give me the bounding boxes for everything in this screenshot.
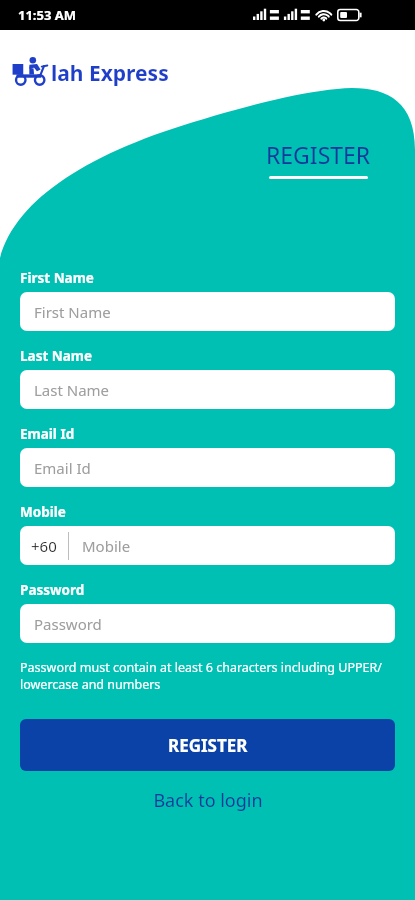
button[interactable]: Password [20, 604, 395, 643]
button[interactable]: REGISTER [20, 719, 395, 771]
staticText: Last Name [34, 380, 110, 400]
staticText: Mobile [20, 503, 66, 521]
staticText: Password [34, 614, 102, 634]
staticText: Email Id [20, 425, 75, 443]
staticText: lah Express [51, 59, 169, 88]
staticText: Last Name [20, 347, 93, 365]
button[interactable]: Back to login [20, 784, 395, 816]
staticText: First Name [34, 302, 111, 322]
staticText: REGISTER [168, 734, 248, 757]
staticText: Password [20, 581, 85, 599]
staticText: Back to login [153, 788, 263, 813]
staticText: REGISTER [266, 139, 371, 170]
button[interactable]: First Name [20, 292, 395, 331]
staticText: Mobile [82, 536, 131, 556]
button[interactable]: +60 [20, 526, 395, 565]
button[interactable]: Last Name [20, 370, 395, 409]
staticText: First Name [20, 269, 94, 287]
staticText: 11:53 AM [18, 6, 77, 24]
staticText: Password must contain at least 6 charact… [20, 659, 395, 693]
other: Olah Express logo [12, 55, 56, 91]
button[interactable]: Email Id [20, 448, 395, 487]
staticText: Email Id [34, 458, 91, 478]
staticText: +60 [31, 536, 57, 556]
